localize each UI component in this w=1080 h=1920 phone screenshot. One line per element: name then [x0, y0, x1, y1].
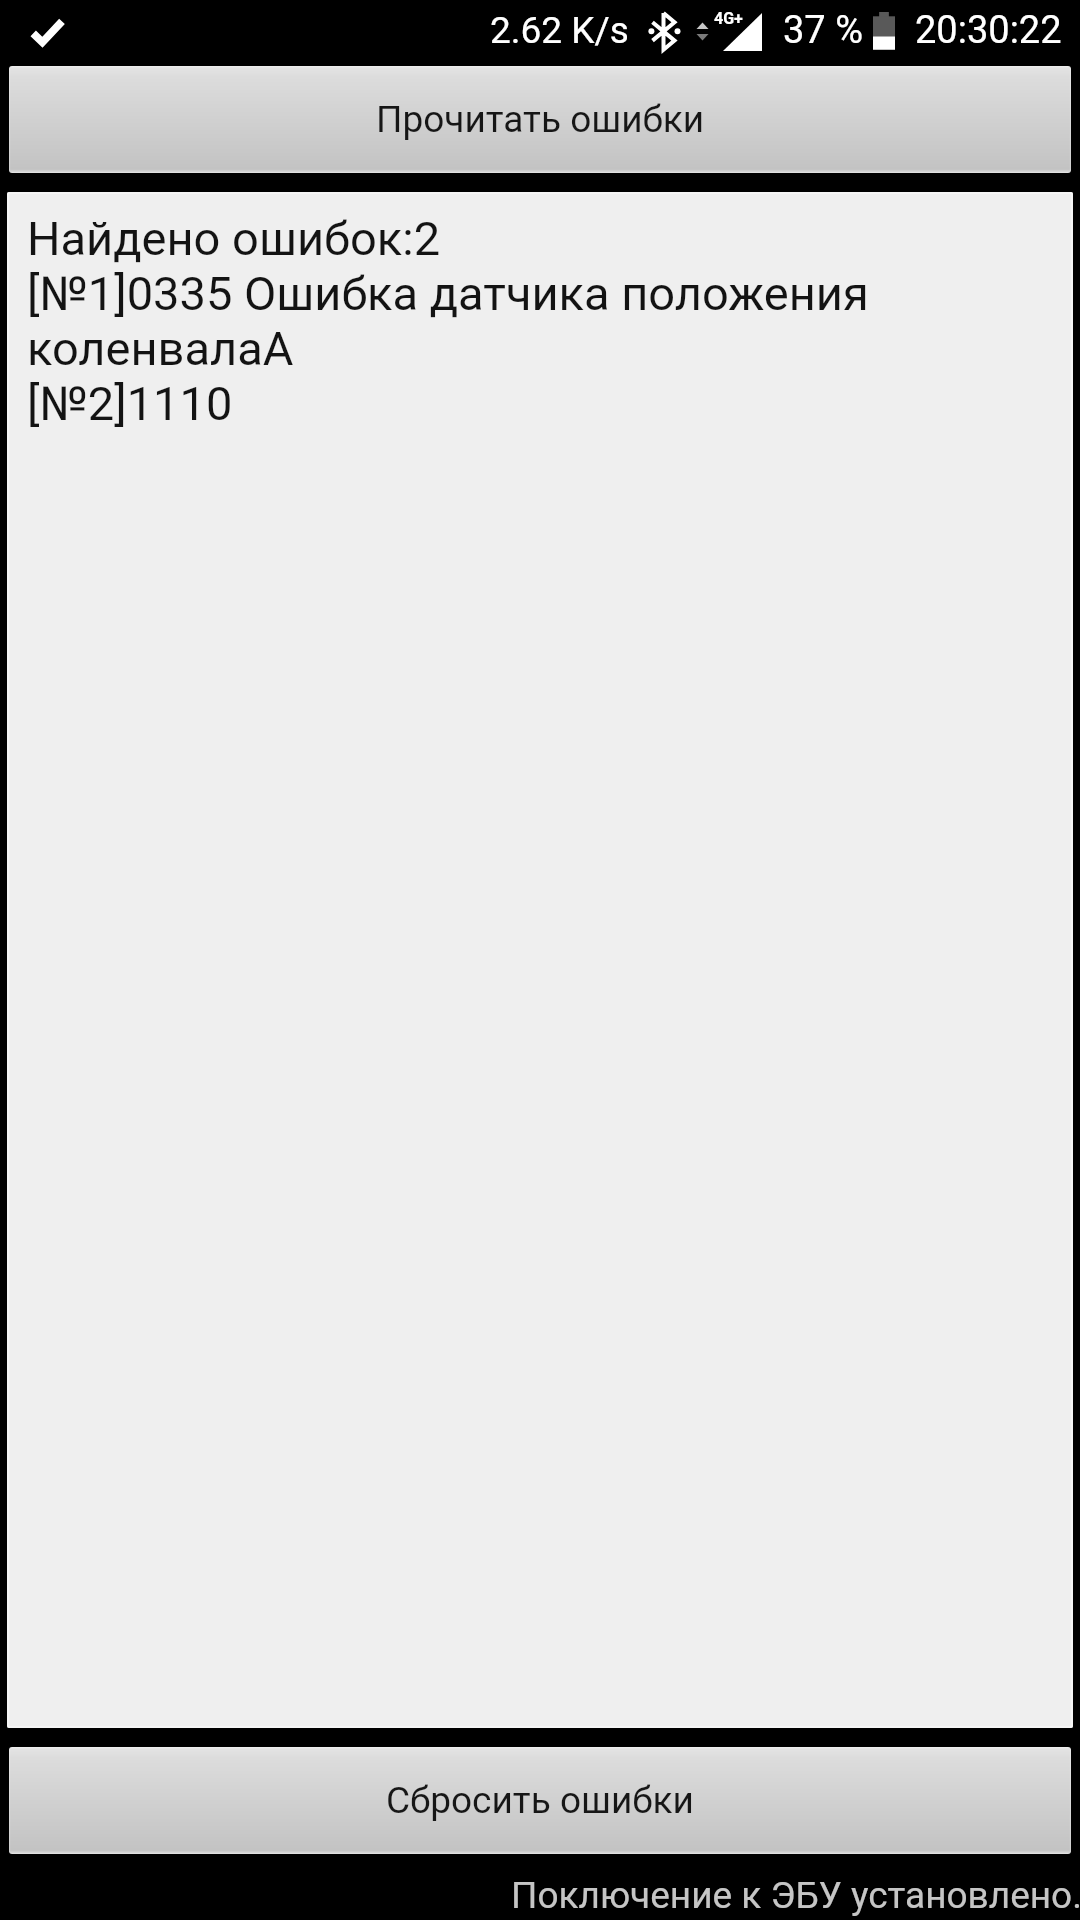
staticText: 37 %: [783, 8, 863, 53]
other: Mobile signal 4G+: [694, 10, 764, 52]
staticText: Поключение к ЭБУ установлено.: [511, 1874, 1080, 1917]
button[interactable]: Прочитать ошибки: [9, 66, 1071, 173]
staticText: Прочитать ошибки: [376, 98, 705, 141]
button[interactable]: Сбросить ошибки: [9, 1747, 1071, 1854]
staticText: 20:30:22: [915, 8, 1062, 53]
button[interactable]: Найдено ошибок:2 [№1]0335 Ошибка датчика…: [7, 192, 1073, 1728]
other: Notification: [24, 12, 72, 52]
staticText: 4G+: [714, 9, 743, 28]
other: Bluetooth connected: [645, 11, 683, 52]
staticText: 2.62 K/s: [490, 9, 629, 52]
other: Battery 37 percent: [870, 10, 899, 52]
staticText: Сбросить ошибки: [386, 1779, 694, 1822]
staticText: Найдено ошибок:2 [№1]0335 Ошибка датчика…: [27, 211, 1055, 431]
